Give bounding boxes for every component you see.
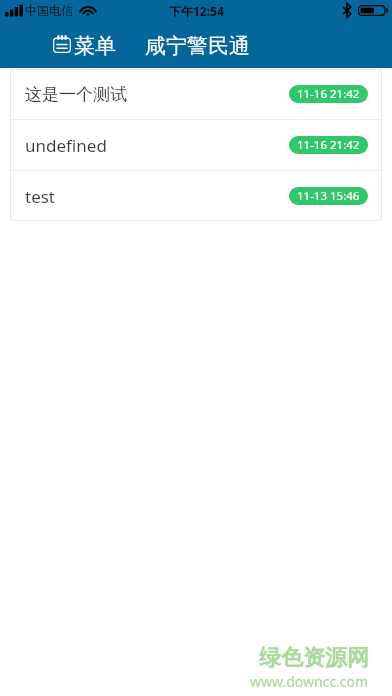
staticText: www.downcc.com: [250, 672, 369, 691]
other: Wi-Fi: [79, 4, 97, 17]
staticText: 中国电信: [25, 3, 73, 18]
staticText: 下午12:54: [169, 3, 224, 19]
button[interactable]: test: [10, 171, 382, 221]
other: Cellular signal: [5, 4, 23, 17]
staticText: test: [25, 185, 56, 208]
staticText: 咸宁警民通: [145, 33, 250, 59]
staticText: 绿色资源网: [259, 644, 369, 672]
other: Bluetooth: [342, 3, 352, 18]
other: Battery: [358, 5, 389, 16]
button[interactable]: undefined: [10, 120, 382, 170]
staticText: undefined: [25, 134, 107, 157]
button[interactable]: 菜单: [49, 28, 120, 64]
staticText: 这是一个测试: [25, 84, 127, 105]
staticText: 菜单: [74, 33, 116, 59]
staticText: 11-16 21:42: [297, 86, 360, 102]
staticText: 11-16 21:42: [297, 137, 360, 153]
staticText: 11-13 15:46: [297, 188, 360, 204]
button[interactable]: 这是一个测试: [10, 69, 382, 119]
